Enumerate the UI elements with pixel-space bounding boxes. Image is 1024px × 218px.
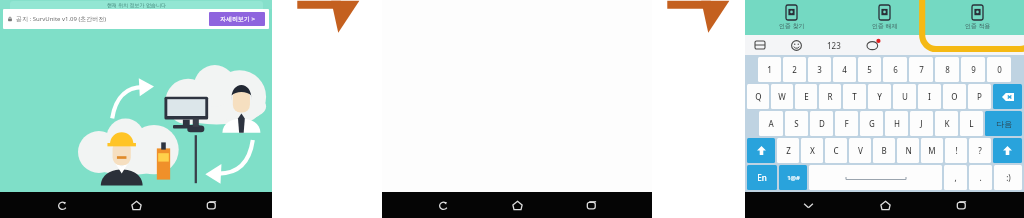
button[interactable]: D xyxy=(810,111,833,136)
button[interactable]: Clipboard xyxy=(753,38,767,52)
staticText: 자세히보기 > xyxy=(220,15,255,23)
staticText: ? xyxy=(978,145,982,156)
staticText: K xyxy=(944,118,950,129)
button[interactable]: Home xyxy=(123,192,149,218)
button[interactable]: 7 xyxy=(909,57,933,82)
button[interactable]: U xyxy=(893,84,916,109)
button[interactable]: J xyxy=(910,111,933,136)
staticText: 4 xyxy=(842,64,847,75)
staticText: W xyxy=(778,91,786,102)
button[interactable]: 1@# xyxy=(779,165,807,190)
staticText: 인증 해제 xyxy=(872,22,898,30)
button[interactable]: P xyxy=(968,84,991,109)
button[interactable] xyxy=(809,165,942,190)
staticText: V xyxy=(858,145,863,156)
button[interactable]: , xyxy=(944,165,967,190)
button[interactable]: 1 xyxy=(758,57,781,82)
staticText: L xyxy=(969,118,974,129)
button[interactable]: Back xyxy=(49,192,75,218)
staticText: . xyxy=(979,172,982,183)
staticText: I xyxy=(928,91,931,102)
staticText: 5 xyxy=(867,64,872,75)
staticText: F xyxy=(844,118,849,129)
staticText: X xyxy=(810,145,815,156)
staticText: P xyxy=(977,91,982,102)
button[interactable]: W xyxy=(771,84,793,109)
button[interactable]: Back xyxy=(430,192,456,218)
button[interactable]: M xyxy=(921,138,943,163)
button[interactable]: X xyxy=(801,138,823,163)
staticText: 공지 : SurvUnite v1.09 (초간버전) xyxy=(16,15,107,23)
staticText: A xyxy=(768,118,774,129)
staticText: S xyxy=(794,118,799,129)
button[interactable]: 2 xyxy=(783,57,806,82)
button[interactable]: Settings xyxy=(865,37,881,53)
button[interactable]: C xyxy=(825,138,847,163)
button[interactable]: R xyxy=(819,84,841,109)
staticText: 2 xyxy=(792,64,797,75)
staticText: 7 xyxy=(919,64,924,75)
staticText: 1@# xyxy=(787,174,800,182)
staticText: Z xyxy=(786,145,791,156)
staticText: H xyxy=(894,118,900,129)
button[interactable]: G xyxy=(860,111,883,136)
button[interactable]: I xyxy=(918,84,941,109)
button[interactable]: Emoji xyxy=(789,38,803,52)
button[interactable]: Z xyxy=(777,138,799,163)
button[interactable]: N xyxy=(897,138,919,163)
button[interactable]: ! xyxy=(945,138,967,163)
button[interactable]: 공지 : SurvUnite v1.09 (초간버전) xyxy=(3,9,269,29)
button[interactable]: F xyxy=(835,111,858,136)
staticText: 123 xyxy=(827,40,841,51)
button[interactable]: E xyxy=(795,84,817,109)
button[interactable] xyxy=(747,138,775,163)
button[interactable]: A xyxy=(759,111,783,136)
button[interactable]: K xyxy=(935,111,958,136)
staticText: R xyxy=(827,91,833,102)
button[interactable]: Recent apps xyxy=(198,192,224,218)
button[interactable]: Home xyxy=(504,192,530,218)
button[interactable]: Q xyxy=(747,84,769,109)
button[interactable]: 4 xyxy=(833,57,856,82)
staticText: J xyxy=(920,118,923,129)
button[interactable]: 8 xyxy=(935,57,959,82)
button[interactable]: 다음 xyxy=(985,111,1022,136)
button[interactable]: 3 xyxy=(808,57,831,82)
button[interactable]: 5 xyxy=(858,57,881,82)
staticText: U xyxy=(902,91,908,102)
staticText: 인증 적용 xyxy=(965,22,991,30)
button[interactable]: Home xyxy=(872,192,898,218)
button[interactable]: B xyxy=(873,138,895,163)
button[interactable]: V xyxy=(849,138,871,163)
button[interactable]: 자세히보기 > xyxy=(209,12,265,26)
button[interactable]: 9 xyxy=(961,57,985,82)
button[interactable]: :) xyxy=(994,165,1022,190)
button[interactable]: En xyxy=(747,165,777,190)
button[interactable]: 6 xyxy=(883,57,907,82)
button[interactable]: 인증 해제 xyxy=(838,0,931,35)
button[interactable]: Y xyxy=(868,84,891,109)
staticText: 3 xyxy=(817,64,822,75)
staticText: 6 xyxy=(893,64,898,75)
button[interactable]: Recent apps xyxy=(948,192,974,218)
button[interactable]: H xyxy=(885,111,908,136)
button[interactable]: Hide keyboard xyxy=(795,192,821,218)
button[interactable] xyxy=(993,84,1022,109)
button[interactable]: 인증 적용 xyxy=(931,0,1024,35)
staticText: 인증 찾기 xyxy=(779,22,805,30)
staticText: En xyxy=(757,172,767,183)
button[interactable]: T xyxy=(843,84,866,109)
button[interactable]: L xyxy=(960,111,983,136)
staticText: 9 xyxy=(971,64,976,75)
button[interactable]: O xyxy=(943,84,966,109)
button[interactable]: 0 xyxy=(987,57,1011,82)
staticText: Y xyxy=(877,91,882,102)
staticText: ! xyxy=(955,145,958,156)
button[interactable]: 123 xyxy=(827,40,841,51)
button[interactable]: Recent apps xyxy=(578,192,604,218)
button[interactable]: 인증 찾기 xyxy=(745,0,838,35)
button[interactable] xyxy=(993,138,1022,163)
button[interactable]: S xyxy=(785,111,808,136)
button[interactable]: . xyxy=(969,165,992,190)
button[interactable]: ? xyxy=(969,138,991,163)
